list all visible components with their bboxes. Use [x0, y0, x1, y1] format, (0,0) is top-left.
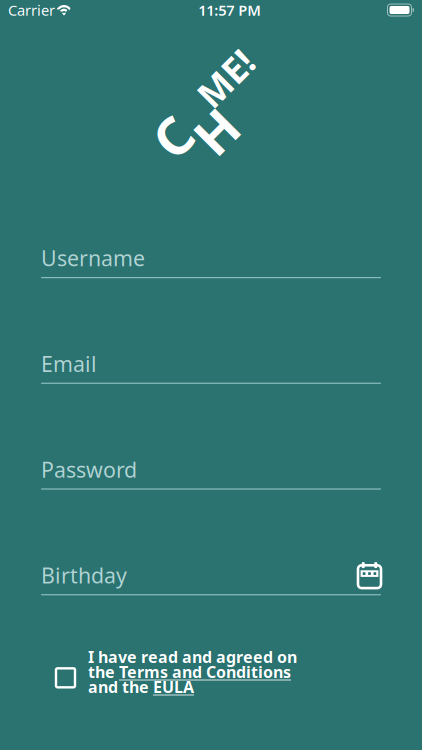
- staticText: Username: [41, 244, 145, 272]
- button[interactable]: Choose birthday: [358, 562, 381, 588]
- staticText: 11:57 PM: [198, 0, 261, 20]
- staticText: Email: [41, 349, 97, 378]
- staticText: and the EULA: [88, 676, 194, 697]
- staticText: I have read and agreed on: [88, 646, 297, 667]
- staticText: ME!: [212, 73, 276, 121]
- staticText: H: [180, 93, 220, 163]
- button[interactable]: I have read and agreed on: [56, 649, 381, 694]
- staticText: the Terms and Conditions: [88, 661, 291, 682]
- staticText: C: [148, 66, 181, 136]
- staticText: Password: [41, 455, 137, 483]
- staticText: Birthday: [41, 561, 127, 589]
- staticText: Carrier: [8, 0, 55, 20]
